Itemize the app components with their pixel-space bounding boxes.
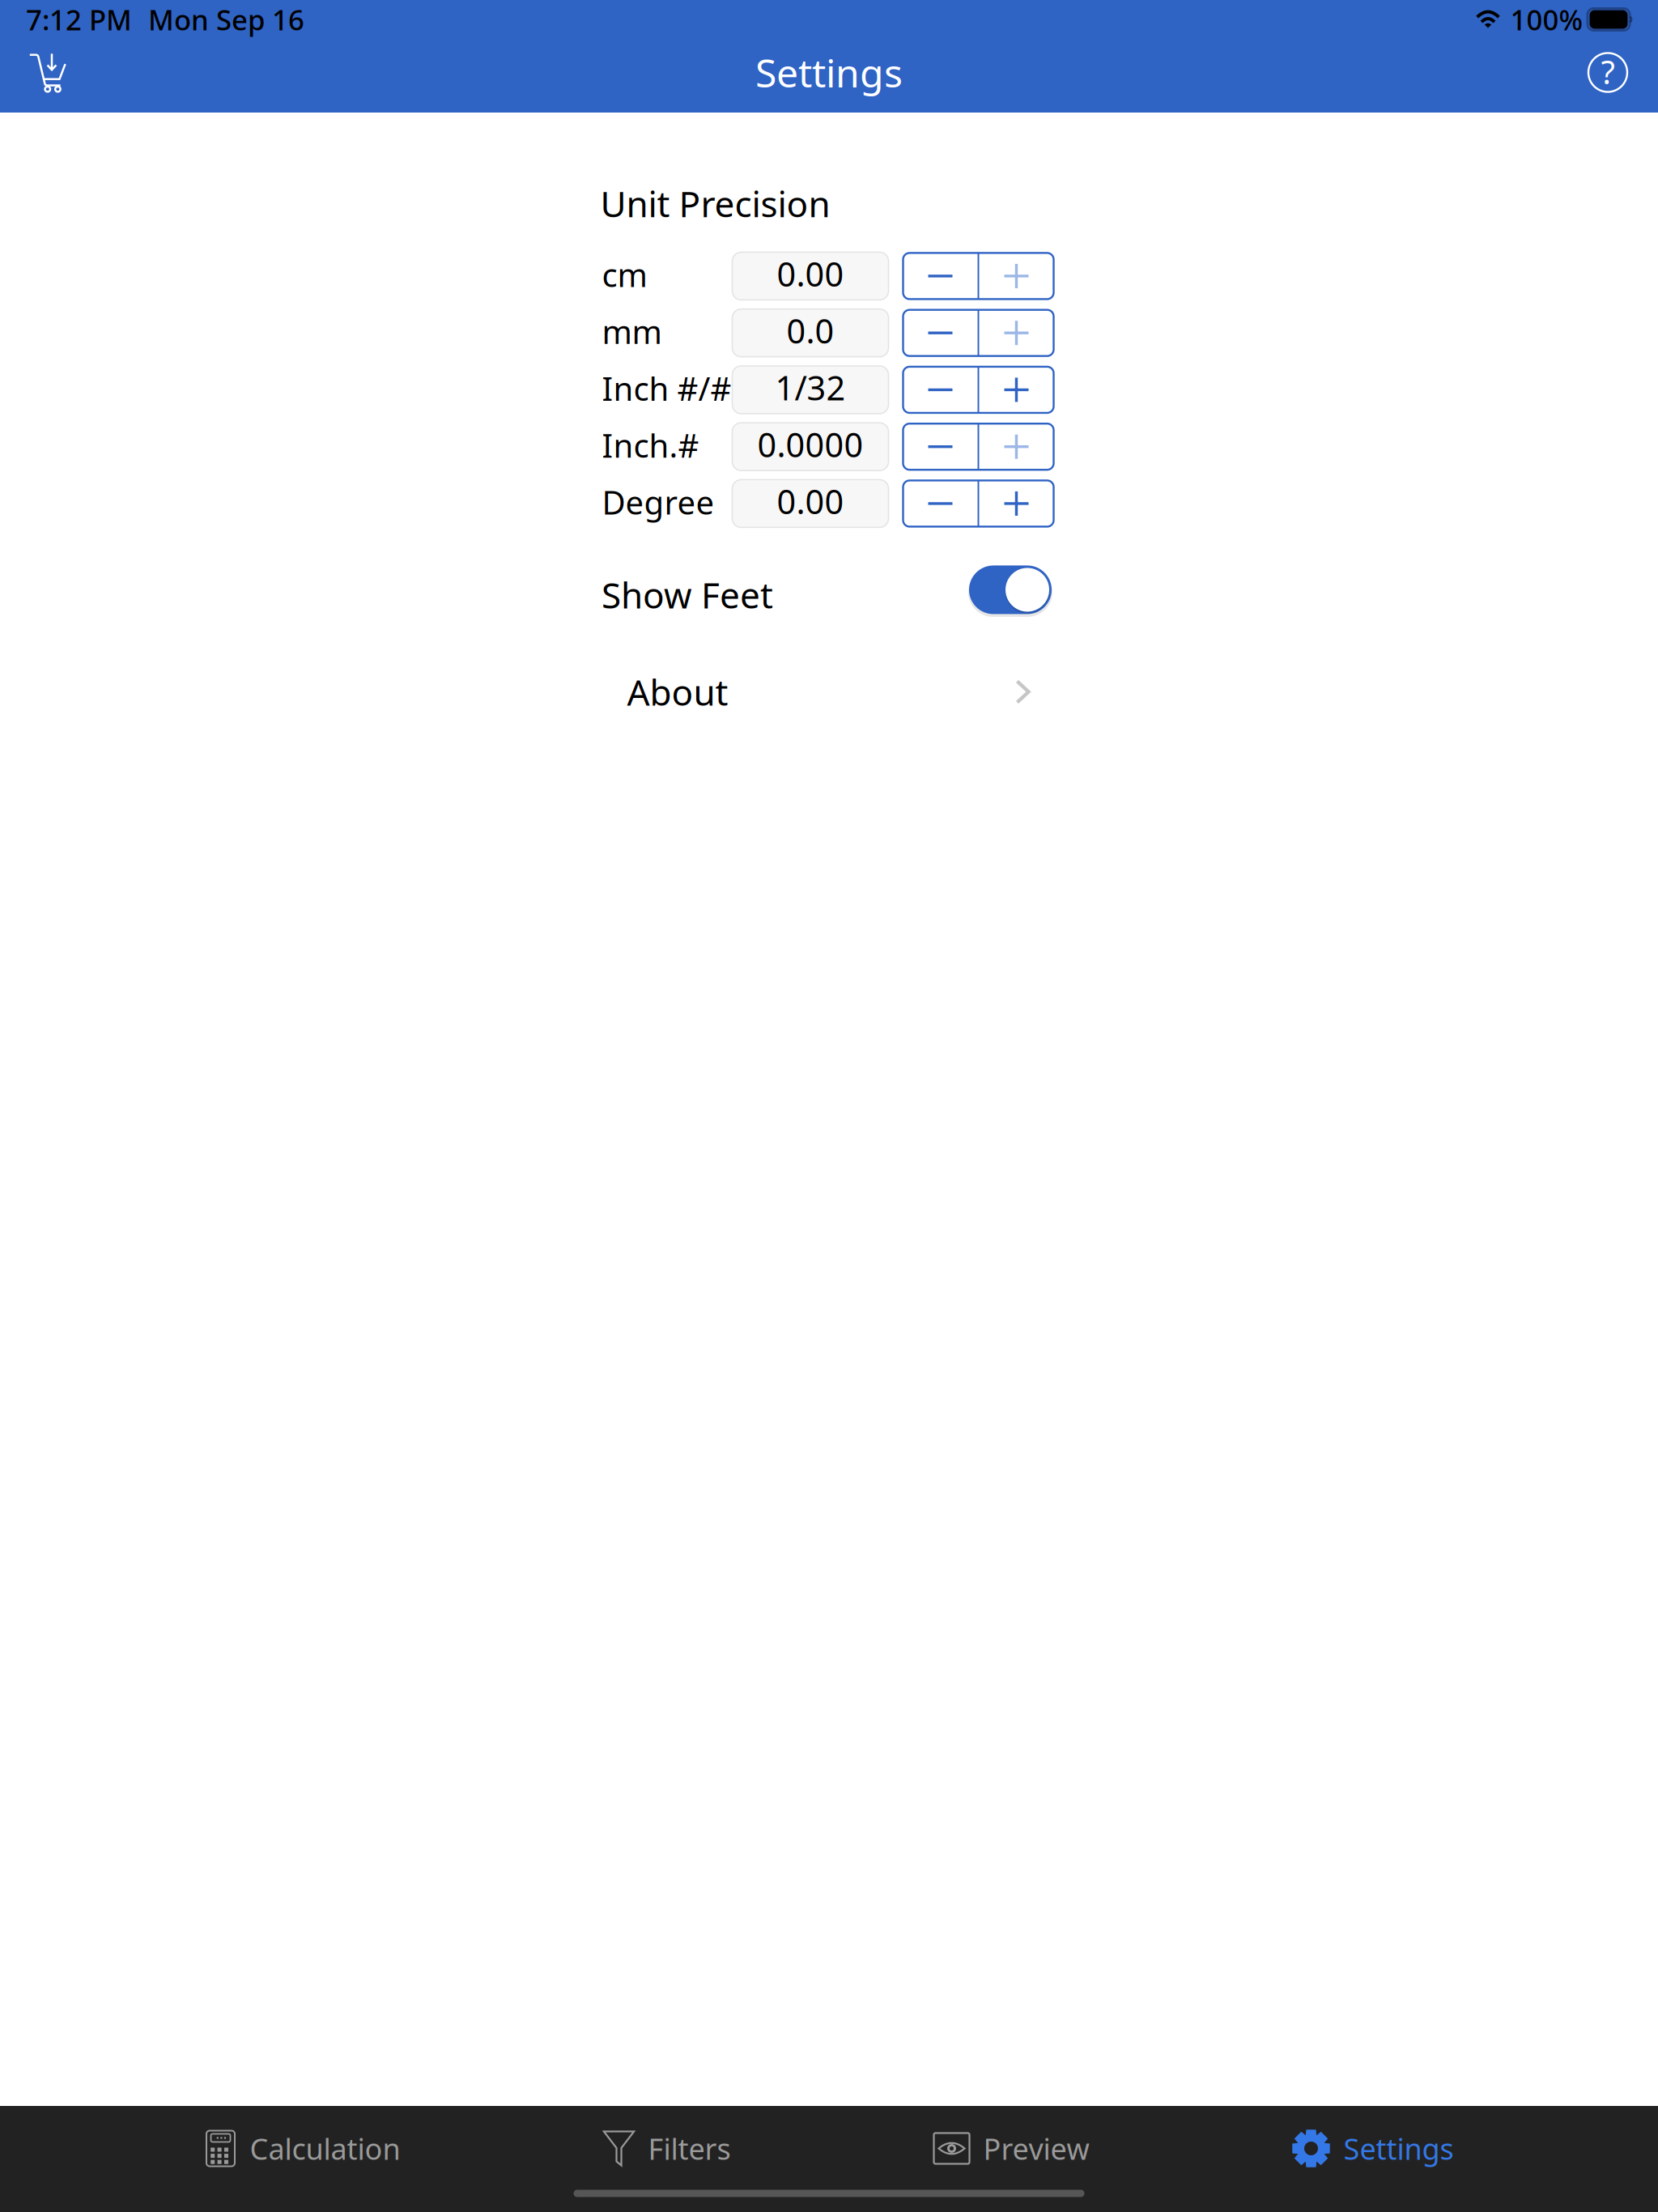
staticText: 100% <box>1510 1 1583 38</box>
staticText: 1/32 <box>775 365 846 410</box>
button[interactable] <box>903 310 1054 356</box>
staticText: 0.0 <box>786 308 834 353</box>
staticText: Unit Precision <box>600 180 830 227</box>
staticText: 7:12 PM <box>26 1 132 38</box>
staticText: Inch #/# <box>602 367 731 410</box>
button[interactable]: In-app purchases <box>15 39 84 113</box>
button[interactable]: Help <box>1572 39 1643 113</box>
staticText: 0.00 <box>777 251 844 296</box>
staticText: About <box>627 668 728 715</box>
button[interactable]: Preview <box>933 2110 1089 2187</box>
staticText: Preview <box>983 2129 1089 2168</box>
button[interactable]: Show Feet <box>969 565 1052 615</box>
staticText: Show Feet <box>602 571 773 618</box>
button[interactable]: Calculation <box>204 2110 400 2187</box>
button[interactable]: About <box>628 680 1030 704</box>
button[interactable] <box>903 424 1054 470</box>
staticText: 0.0000 <box>757 422 863 466</box>
button[interactable] <box>903 480 1054 527</box>
button[interactable] <box>903 253 1054 299</box>
staticText: Filters <box>648 2129 731 2168</box>
staticText: cm <box>602 253 647 296</box>
staticText: ? <box>1601 50 1615 93</box>
staticText: Settings <box>1343 2129 1454 2168</box>
staticText: mm <box>602 310 662 353</box>
button[interactable]: Settings <box>1292 2110 1454 2187</box>
staticText: Degree <box>602 480 714 523</box>
staticText: Calculation <box>250 2129 400 2168</box>
staticText: Mon Sep 16 <box>148 1 304 38</box>
button[interactable] <box>903 367 1054 413</box>
staticText: Inch.# <box>602 424 699 467</box>
staticText: 0.00 <box>777 479 844 523</box>
staticText: Settings <box>755 47 903 98</box>
button[interactable]: Filters <box>603 2110 731 2187</box>
